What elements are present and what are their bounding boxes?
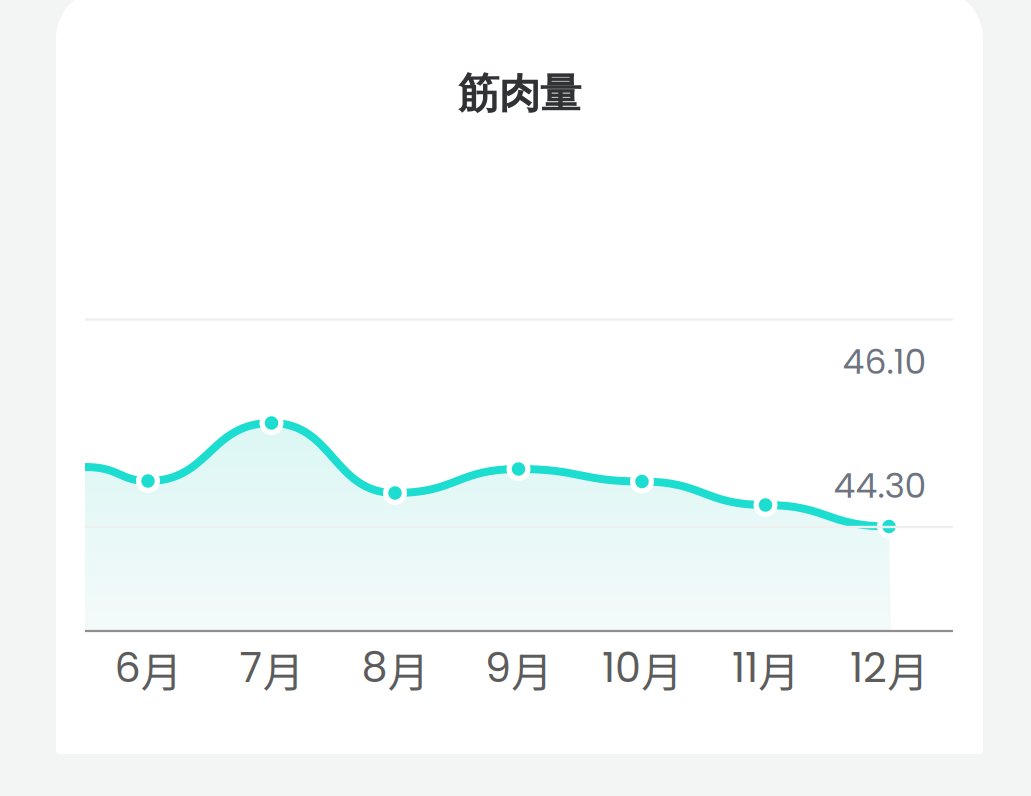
staticText: 12月 [850, 639, 928, 699]
staticText: 11月 [732, 639, 799, 699]
staticText: 44.30 [833, 461, 926, 510]
staticText: 7月 [239, 639, 303, 699]
staticText: 9月 [485, 639, 552, 699]
staticText: 10月 [602, 639, 682, 699]
staticText: 46.10 [842, 337, 926, 386]
staticText: 筋肉量 [458, 68, 581, 120]
staticText: 8月 [361, 639, 428, 699]
staticText: 6月 [114, 639, 181, 699]
